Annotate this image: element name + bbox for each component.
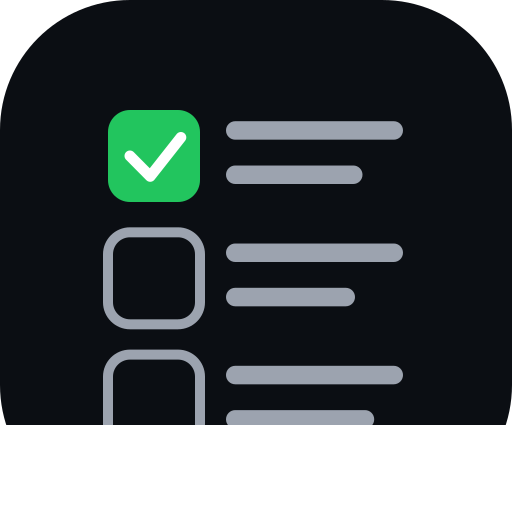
button[interactable]: Call the dentist, not completed bbox=[108, 355, 403, 447]
button[interactable]: Walk the dog, not completed bbox=[108, 232, 403, 324]
button[interactable]: Buy groceries, completed bbox=[108, 110, 403, 202]
